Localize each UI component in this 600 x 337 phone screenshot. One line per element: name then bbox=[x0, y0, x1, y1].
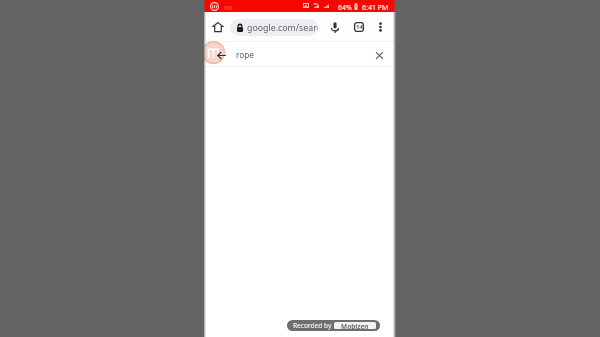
button[interactable]: Voice search bbox=[326, 18, 344, 36]
staticText: HD bbox=[224, 4, 233, 11]
staticText: Recorded by bbox=[293, 321, 332, 330]
staticText: google.com/search?q bbox=[247, 22, 318, 34]
button[interactable]: Back bbox=[213, 47, 229, 63]
button[interactable]: Home bbox=[208, 17, 228, 37]
staticText: 14 bbox=[356, 23, 363, 31]
button[interactable]: More options bbox=[371, 18, 389, 36]
button[interactable]: google.com/search?q bbox=[230, 19, 318, 36]
staticText: 6:41 PM bbox=[362, 3, 389, 13]
button[interactable]: Clear search bbox=[371, 47, 387, 63]
staticText: Mobizen bbox=[341, 322, 369, 329]
staticText: 64% bbox=[338, 3, 352, 13]
button[interactable]: Switch tabs bbox=[350, 18, 368, 36]
staticText: rope bbox=[236, 49, 254, 60]
